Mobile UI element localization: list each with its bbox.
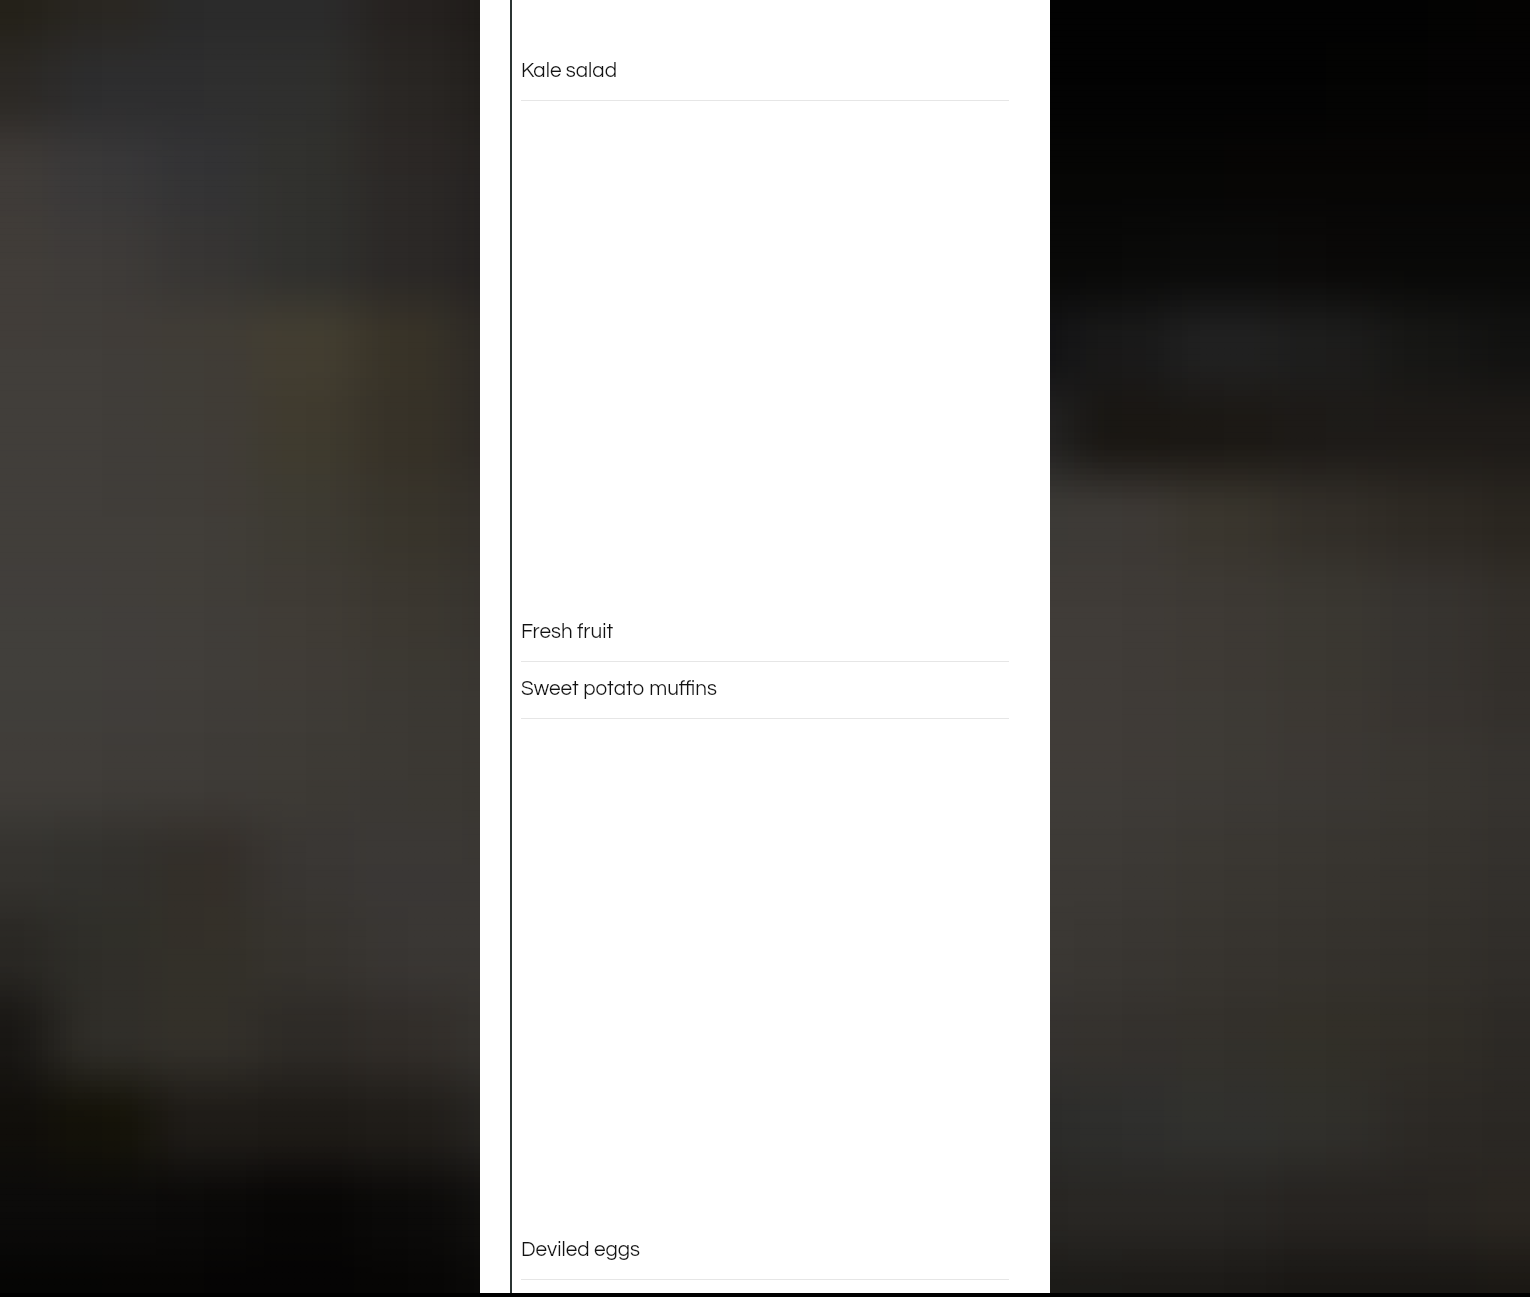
- staticText: Fresh fruit: [521, 621, 614, 642]
- button[interactable]: Deviled eggs: [521, 1223, 1009, 1280]
- button[interactable]: Fresh fruit: [521, 605, 1009, 662]
- staticText: Deviled eggs: [521, 1239, 641, 1260]
- staticText: Kale salad: [521, 60, 617, 81]
- button[interactable]: Kale salad: [521, 44, 1009, 101]
- button[interactable]: Sweet potato muffins: [521, 662, 1009, 719]
- staticText: Sweet potato muffins: [521, 678, 717, 699]
